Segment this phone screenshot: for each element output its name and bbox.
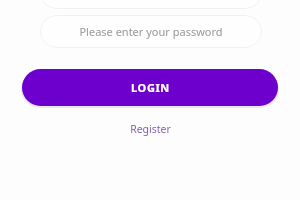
staticText: Register <box>130 122 171 136</box>
staticText: LOGIN <box>131 80 170 95</box>
button[interactable]: LOGIN <box>22 69 278 106</box>
staticText: Please enter your password <box>79 24 223 39</box>
button[interactable]: Register <box>124 119 177 139</box>
button[interactable]: Please enter your username <box>40 0 262 9</box>
button[interactable]: Please enter your password <box>40 15 262 48</box>
